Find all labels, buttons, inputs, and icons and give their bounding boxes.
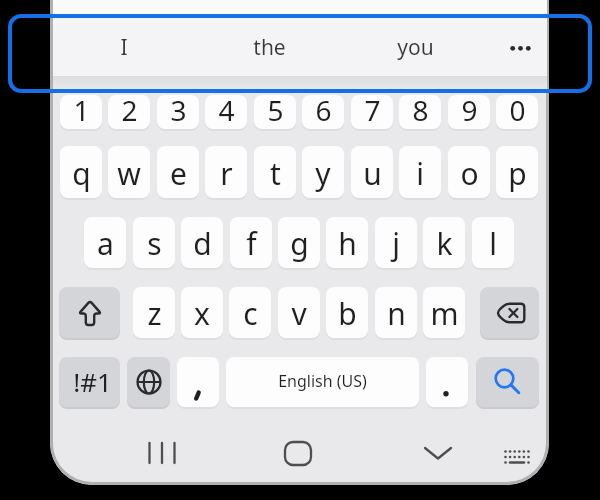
staticText: k (436, 223, 453, 264)
button[interactable]: x (181, 287, 223, 338)
button[interactable] (476, 357, 539, 407)
button[interactable]: g (278, 217, 320, 268)
staticText: 2 (121, 95, 138, 125)
button[interactable]: v (278, 287, 320, 338)
staticText: English (US) (278, 370, 367, 392)
staticText: f (246, 223, 257, 264)
button[interactable]: p (496, 146, 538, 198)
staticText: d (193, 223, 212, 264)
button[interactable] (277, 435, 318, 471)
staticText: g (290, 223, 309, 264)
staticText: x (194, 293, 210, 334)
staticText: w (117, 153, 141, 194)
staticText: q (72, 153, 91, 194)
staticText: 0 (509, 95, 526, 125)
button[interactable] (140, 434, 184, 471)
button[interactable]: 9 (448, 95, 490, 129)
staticText: m (430, 293, 459, 334)
staticText: 9 (461, 95, 478, 125)
button[interactable] (177, 357, 219, 407)
button[interactable]: z (133, 287, 175, 338)
button[interactable]: y (302, 146, 344, 198)
staticText: a (97, 223, 114, 264)
button[interactable]: o (448, 146, 490, 198)
button[interactable] (488, 18, 547, 76)
staticText: the (253, 33, 286, 62)
button[interactable] (426, 357, 468, 407)
staticText: 4 (218, 95, 235, 125)
staticText: 8 (412, 95, 429, 125)
button[interactable]: n (375, 287, 417, 338)
button[interactable]: k (423, 217, 465, 268)
staticText: 5 (267, 95, 284, 125)
button[interactable]: 8 (399, 95, 441, 129)
staticText: e (170, 153, 187, 194)
staticText: u (363, 153, 382, 194)
button[interactable]: u (351, 146, 393, 198)
button[interactable]: I (52, 18, 196, 76)
button[interactable] (59, 287, 120, 338)
button[interactable]: 7 (351, 95, 393, 129)
button[interactable]: d (181, 217, 223, 268)
button[interactable]: you (342, 18, 488, 76)
button[interactable]: a (84, 217, 126, 268)
staticText: z (147, 293, 162, 334)
button[interactable] (480, 287, 539, 338)
button[interactable]: 3 (157, 95, 199, 129)
staticText: 7 (364, 95, 381, 125)
staticText: s (147, 223, 162, 264)
staticText: c (243, 293, 258, 334)
staticText: h (338, 223, 357, 264)
staticText: !#1 (73, 364, 112, 399)
staticText: n (387, 293, 406, 334)
button[interactable] (498, 440, 536, 474)
staticText: o (460, 153, 479, 194)
button[interactable]: l (472, 217, 514, 268)
button[interactable]: the (196, 18, 342, 76)
staticText: r (220, 153, 233, 194)
staticText: you (397, 33, 434, 62)
button[interactable]: j (375, 217, 417, 268)
button[interactable]: 5 (254, 95, 296, 129)
button[interactable]: b (326, 287, 368, 338)
button[interactable]: 0 (496, 95, 538, 129)
staticText: v (291, 293, 307, 334)
button[interactable]: 1 (60, 95, 102, 129)
staticText: i (416, 153, 424, 194)
button[interactable]: c (229, 287, 271, 338)
button[interactable]: r (205, 146, 247, 198)
staticText: t (270, 153, 281, 194)
button[interactable]: f (230, 217, 272, 268)
button[interactable] (418, 434, 458, 471)
button[interactable]: 6 (302, 95, 344, 129)
button[interactable]: English (US) (226, 357, 419, 407)
button[interactable]: s (133, 217, 175, 268)
button[interactable]: w (108, 146, 150, 198)
staticText: j (392, 223, 400, 264)
staticText: 3 (170, 95, 187, 125)
staticText: l (489, 223, 497, 264)
button[interactable]: 4 (205, 95, 247, 129)
button[interactable]: !#1 (59, 357, 120, 407)
staticText: y (315, 153, 331, 194)
staticText: b (338, 293, 357, 334)
button[interactable]: 2 (108, 95, 150, 129)
button[interactable]: t (254, 146, 296, 198)
button[interactable] (127, 357, 170, 407)
staticText: p (508, 153, 527, 194)
button[interactable]: e (157, 146, 199, 198)
button[interactable]: i (399, 146, 441, 198)
staticText: 1 (73, 95, 90, 125)
staticText: I (120, 33, 128, 62)
button[interactable]: q (60, 146, 102, 198)
staticText: 6 (315, 95, 332, 125)
button[interactable]: h (326, 217, 368, 268)
button[interactable]: m (423, 287, 465, 338)
